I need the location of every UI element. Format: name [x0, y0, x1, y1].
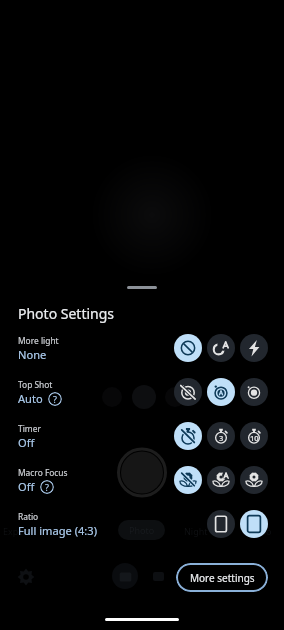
- button[interactable]: Top Shot on: [240, 378, 268, 406]
- button[interactable]: Gallery: [112, 563, 138, 589]
- button[interactable]: Night sight auto: [207, 334, 235, 362]
- button[interactable]: No extra light: [174, 334, 202, 362]
- staticText: None: [18, 347, 47, 362]
- staticText: Top Shot: [18, 379, 53, 390]
- staticText: Macro Focus: [18, 467, 68, 478]
- staticText: Off: [18, 479, 35, 494]
- staticText: Off: [18, 435, 35, 450]
- button[interactable]: 16:9 ratio: [207, 510, 235, 538]
- staticText: More light: [18, 335, 59, 346]
- staticText: Photo: [129, 524, 155, 536]
- staticText: Timer: [18, 423, 41, 434]
- button[interactable]: Macro focus on: [240, 466, 268, 494]
- button[interactable]: Top Shot auto: [207, 378, 235, 406]
- button[interactable]: Macro focus off: [174, 466, 202, 494]
- button[interactable]: Flash on: [240, 334, 268, 362]
- staticText: Ratio: [18, 511, 39, 522]
- staticText: ?: [45, 481, 49, 493]
- button[interactable]: Timer off: [174, 422, 202, 450]
- button[interactable]: Pano: [250, 525, 272, 537]
- staticText: Photo Settings: [18, 304, 115, 323]
- staticText: ?: [53, 393, 57, 405]
- staticText: Full image (4:3): [18, 523, 97, 538]
- button[interactable]: Full image 4:3 ratio: [240, 510, 268, 538]
- button[interactable]: Expert: [3, 525, 31, 537]
- staticText: 3: [219, 433, 224, 443]
- button[interactable]: Photo: [118, 520, 165, 540]
- staticText: More settings: [190, 571, 255, 585]
- staticText: 10: [250, 433, 259, 443]
- button[interactable]: Help: [40, 480, 54, 494]
- button[interactable]: Top Shot off: [174, 378, 202, 406]
- button[interactable]: Macro focus auto: [207, 466, 235, 494]
- staticText: Auto: [18, 391, 43, 406]
- button[interactable]: Settings: [13, 564, 38, 589]
- button[interactable]: More settings: [176, 563, 268, 592]
- button[interactable]: 3 second timer: [207, 422, 235, 450]
- button[interactable]: Night: [184, 525, 208, 537]
- button[interactable]: Help: [48, 392, 62, 406]
- button[interactable]: 10 second timer: [240, 422, 268, 450]
- button[interactable]: Drag handle: [127, 286, 157, 289]
